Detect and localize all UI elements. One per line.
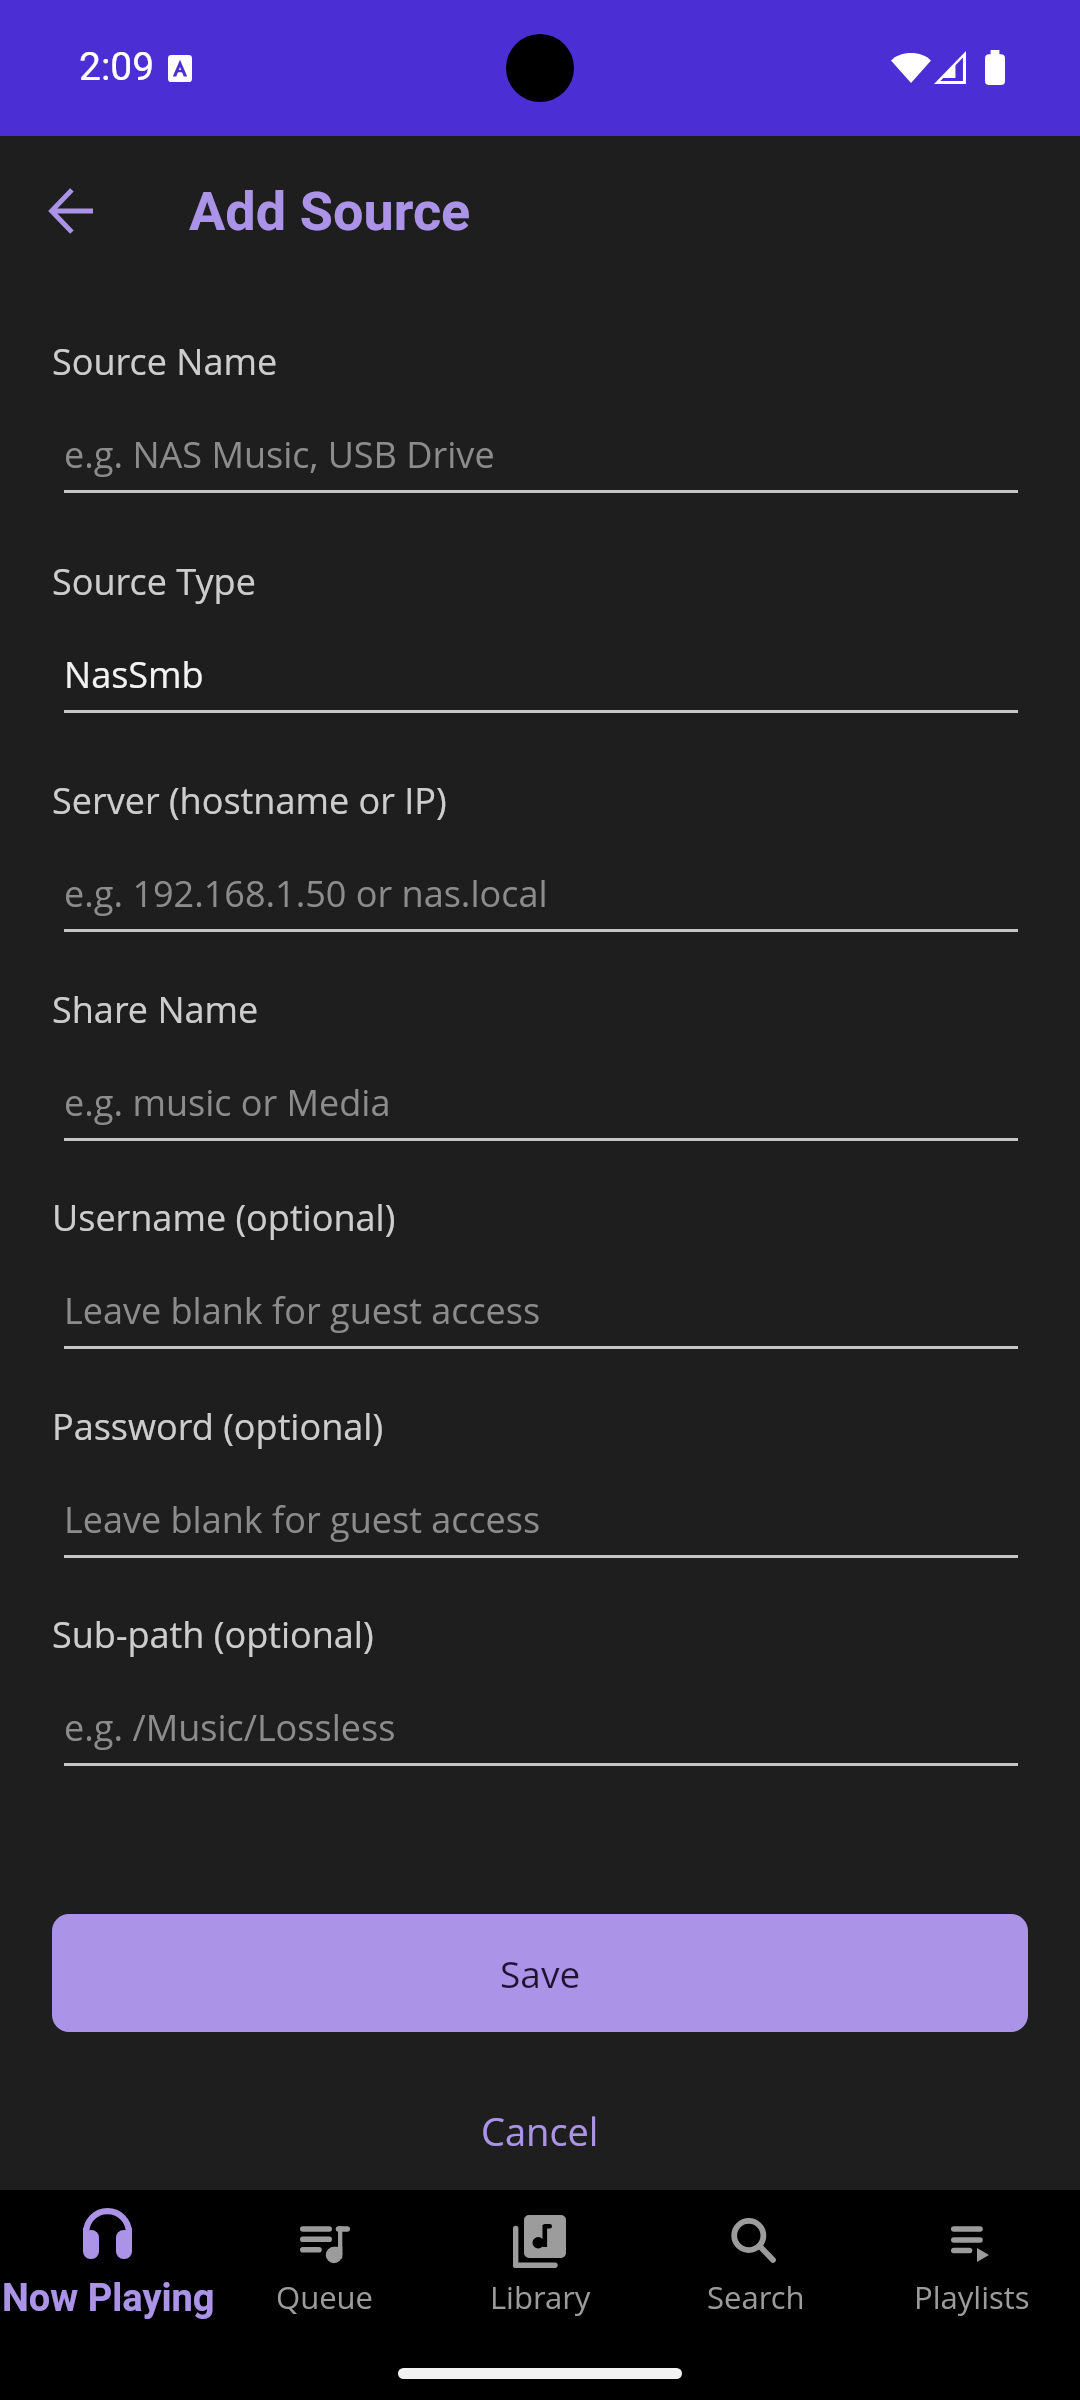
staticText: Library xyxy=(490,2276,591,2318)
button[interactable]: Now Playing xyxy=(0,2190,216,2400)
staticText: Username (optional) xyxy=(52,1193,396,1242)
staticText: Queue xyxy=(276,2276,373,2318)
button[interactable]: Queue xyxy=(216,2190,432,2400)
staticText: e.g. 192.168.1.50 or nas.local xyxy=(64,869,548,918)
button[interactable]: Sub-path (optional) xyxy=(52,1610,1028,1766)
staticText: Password (optional) xyxy=(52,1402,384,1451)
button[interactable]: Source Name xyxy=(52,337,1028,493)
staticText: NasSmb xyxy=(64,650,204,699)
button[interactable]: Search xyxy=(648,2190,864,2400)
staticText: Add Source xyxy=(189,180,471,243)
staticText: e.g. NAS Music, USB Drive xyxy=(64,430,495,479)
staticText: Leave blank for guest access xyxy=(64,1286,541,1335)
button[interactable]: Source Type xyxy=(52,557,1028,713)
staticText: Share Name xyxy=(52,985,259,1034)
staticText: Now Playing xyxy=(2,2276,215,2321)
button[interactable]: Share Name xyxy=(52,985,1028,1141)
staticText: Server (hostname or IP) xyxy=(52,776,447,825)
staticText: e.g. music or Media xyxy=(64,1078,391,1127)
staticText: Cancel xyxy=(481,2105,599,2157)
staticText: Playlists xyxy=(914,2276,1030,2318)
button[interactable]: Back xyxy=(19,173,123,249)
button[interactable]: Password (optional) xyxy=(52,1402,1028,1558)
staticText: e.g. /Music/Lossless xyxy=(64,1703,396,1752)
staticText: Search xyxy=(707,2276,805,2318)
staticText: Source Type xyxy=(52,557,256,606)
staticText: Sub-path (optional) xyxy=(52,1610,374,1659)
button[interactable]: Playlists xyxy=(864,2190,1080,2400)
staticText: 2:09 xyxy=(79,44,155,90)
button[interactable]: Server (hostname or IP) xyxy=(52,776,1028,932)
staticText: Leave blank for guest access xyxy=(64,1495,541,1544)
button[interactable]: Username (optional) xyxy=(52,1193,1028,1349)
button[interactable]: Library xyxy=(432,2190,648,2400)
staticText: Source Name xyxy=(52,337,278,386)
button[interactable]: Cancel xyxy=(0,2091,1080,2171)
staticText: Save xyxy=(500,1948,581,1998)
button[interactable]: Save xyxy=(52,1914,1028,2032)
